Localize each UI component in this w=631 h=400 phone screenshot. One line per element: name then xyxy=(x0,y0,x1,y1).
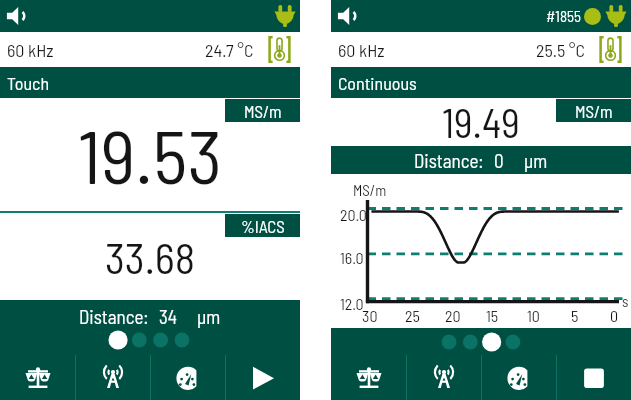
staticText: 0 xyxy=(494,149,504,172)
button[interactable]: Calibrate xyxy=(331,355,406,400)
staticText: Distance: xyxy=(79,305,149,328)
staticText: 25.5 °C xyxy=(536,39,585,61)
staticText: 34 xyxy=(159,305,177,328)
staticText: 30 xyxy=(362,306,378,325)
button[interactable]: Distance: xyxy=(331,146,631,174)
staticText: 25 xyxy=(405,306,420,325)
staticText: 24.7 °C xyxy=(205,39,254,61)
button[interactable]: MS/m xyxy=(556,99,631,122)
button[interactable]: Measure xyxy=(151,355,225,400)
staticText: 60 kHz xyxy=(338,39,385,61)
staticText: µm xyxy=(197,305,221,328)
staticText: 20.0 xyxy=(340,205,367,224)
other: Power connected xyxy=(274,5,296,27)
staticText: s xyxy=(622,292,629,310)
staticText: 20 xyxy=(445,306,461,325)
staticText: 12.0 xyxy=(340,294,364,313)
button[interactable]: 60 kHz xyxy=(331,32,631,67)
staticText: MS/m xyxy=(575,101,613,121)
staticText: 33.68 xyxy=(105,231,195,283)
staticText: 15 xyxy=(486,306,499,325)
button[interactable]: 60 kHz xyxy=(0,32,300,67)
button[interactable]: Probe xyxy=(407,355,481,400)
staticText: 5 xyxy=(571,306,579,325)
button[interactable]: Touch xyxy=(0,67,300,98)
staticText: 60 kHz xyxy=(7,39,54,61)
button[interactable]: Continuous xyxy=(331,67,631,98)
button[interactable]: Distance: xyxy=(0,300,300,355)
staticText: µm xyxy=(524,149,548,172)
other: Power connected xyxy=(605,5,627,27)
button[interactable]: Measure xyxy=(482,355,556,400)
button[interactable]: Stop xyxy=(557,355,631,400)
staticText: 19.49 xyxy=(442,98,520,146)
button[interactable]: Sound xyxy=(336,4,360,28)
button[interactable]: Start xyxy=(226,355,300,400)
staticText: 0 xyxy=(610,306,619,325)
staticText: 10 xyxy=(527,306,540,325)
staticText: Distance: xyxy=(414,149,484,172)
button[interactable] xyxy=(331,328,631,355)
staticText: 19.53 xyxy=(78,109,223,199)
button[interactable]: Probe xyxy=(76,355,150,400)
button[interactable]: Sound xyxy=(5,4,29,28)
button[interactable]: MS/m xyxy=(225,99,300,122)
staticText: %IACS xyxy=(241,216,285,236)
staticText: Touch xyxy=(7,72,50,94)
staticText: Continuous xyxy=(338,72,417,94)
staticText: MS/m xyxy=(353,181,387,199)
button[interactable]: %IACS xyxy=(225,214,300,237)
staticText: MS/m xyxy=(244,101,282,121)
staticText: #1855 xyxy=(546,7,581,25)
button[interactable]: Calibrate xyxy=(0,355,75,400)
staticText: 16.0 xyxy=(340,248,364,267)
